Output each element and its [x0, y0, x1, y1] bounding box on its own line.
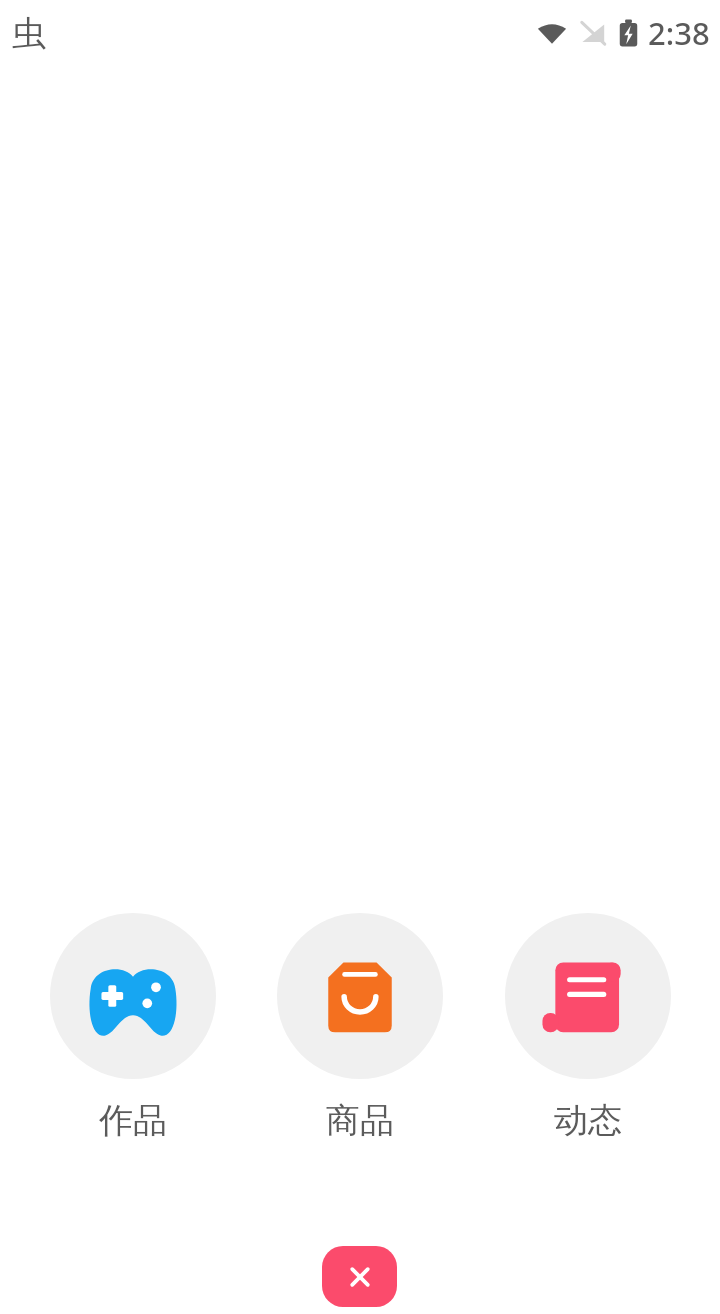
staticText: 虫 [12, 12, 46, 55]
button[interactable]: Close [322, 1246, 397, 1307]
staticText: 2:38 [648, 12, 710, 54]
staticText: 作品 [99, 1099, 167, 1142]
staticText: 动态 [554, 1099, 622, 1142]
button[interactable]: 商品 [265, 913, 455, 1142]
staticText: 商品 [326, 1099, 394, 1142]
button[interactable]: 动态 [493, 913, 683, 1142]
button[interactable]: 作品 [38, 913, 228, 1142]
